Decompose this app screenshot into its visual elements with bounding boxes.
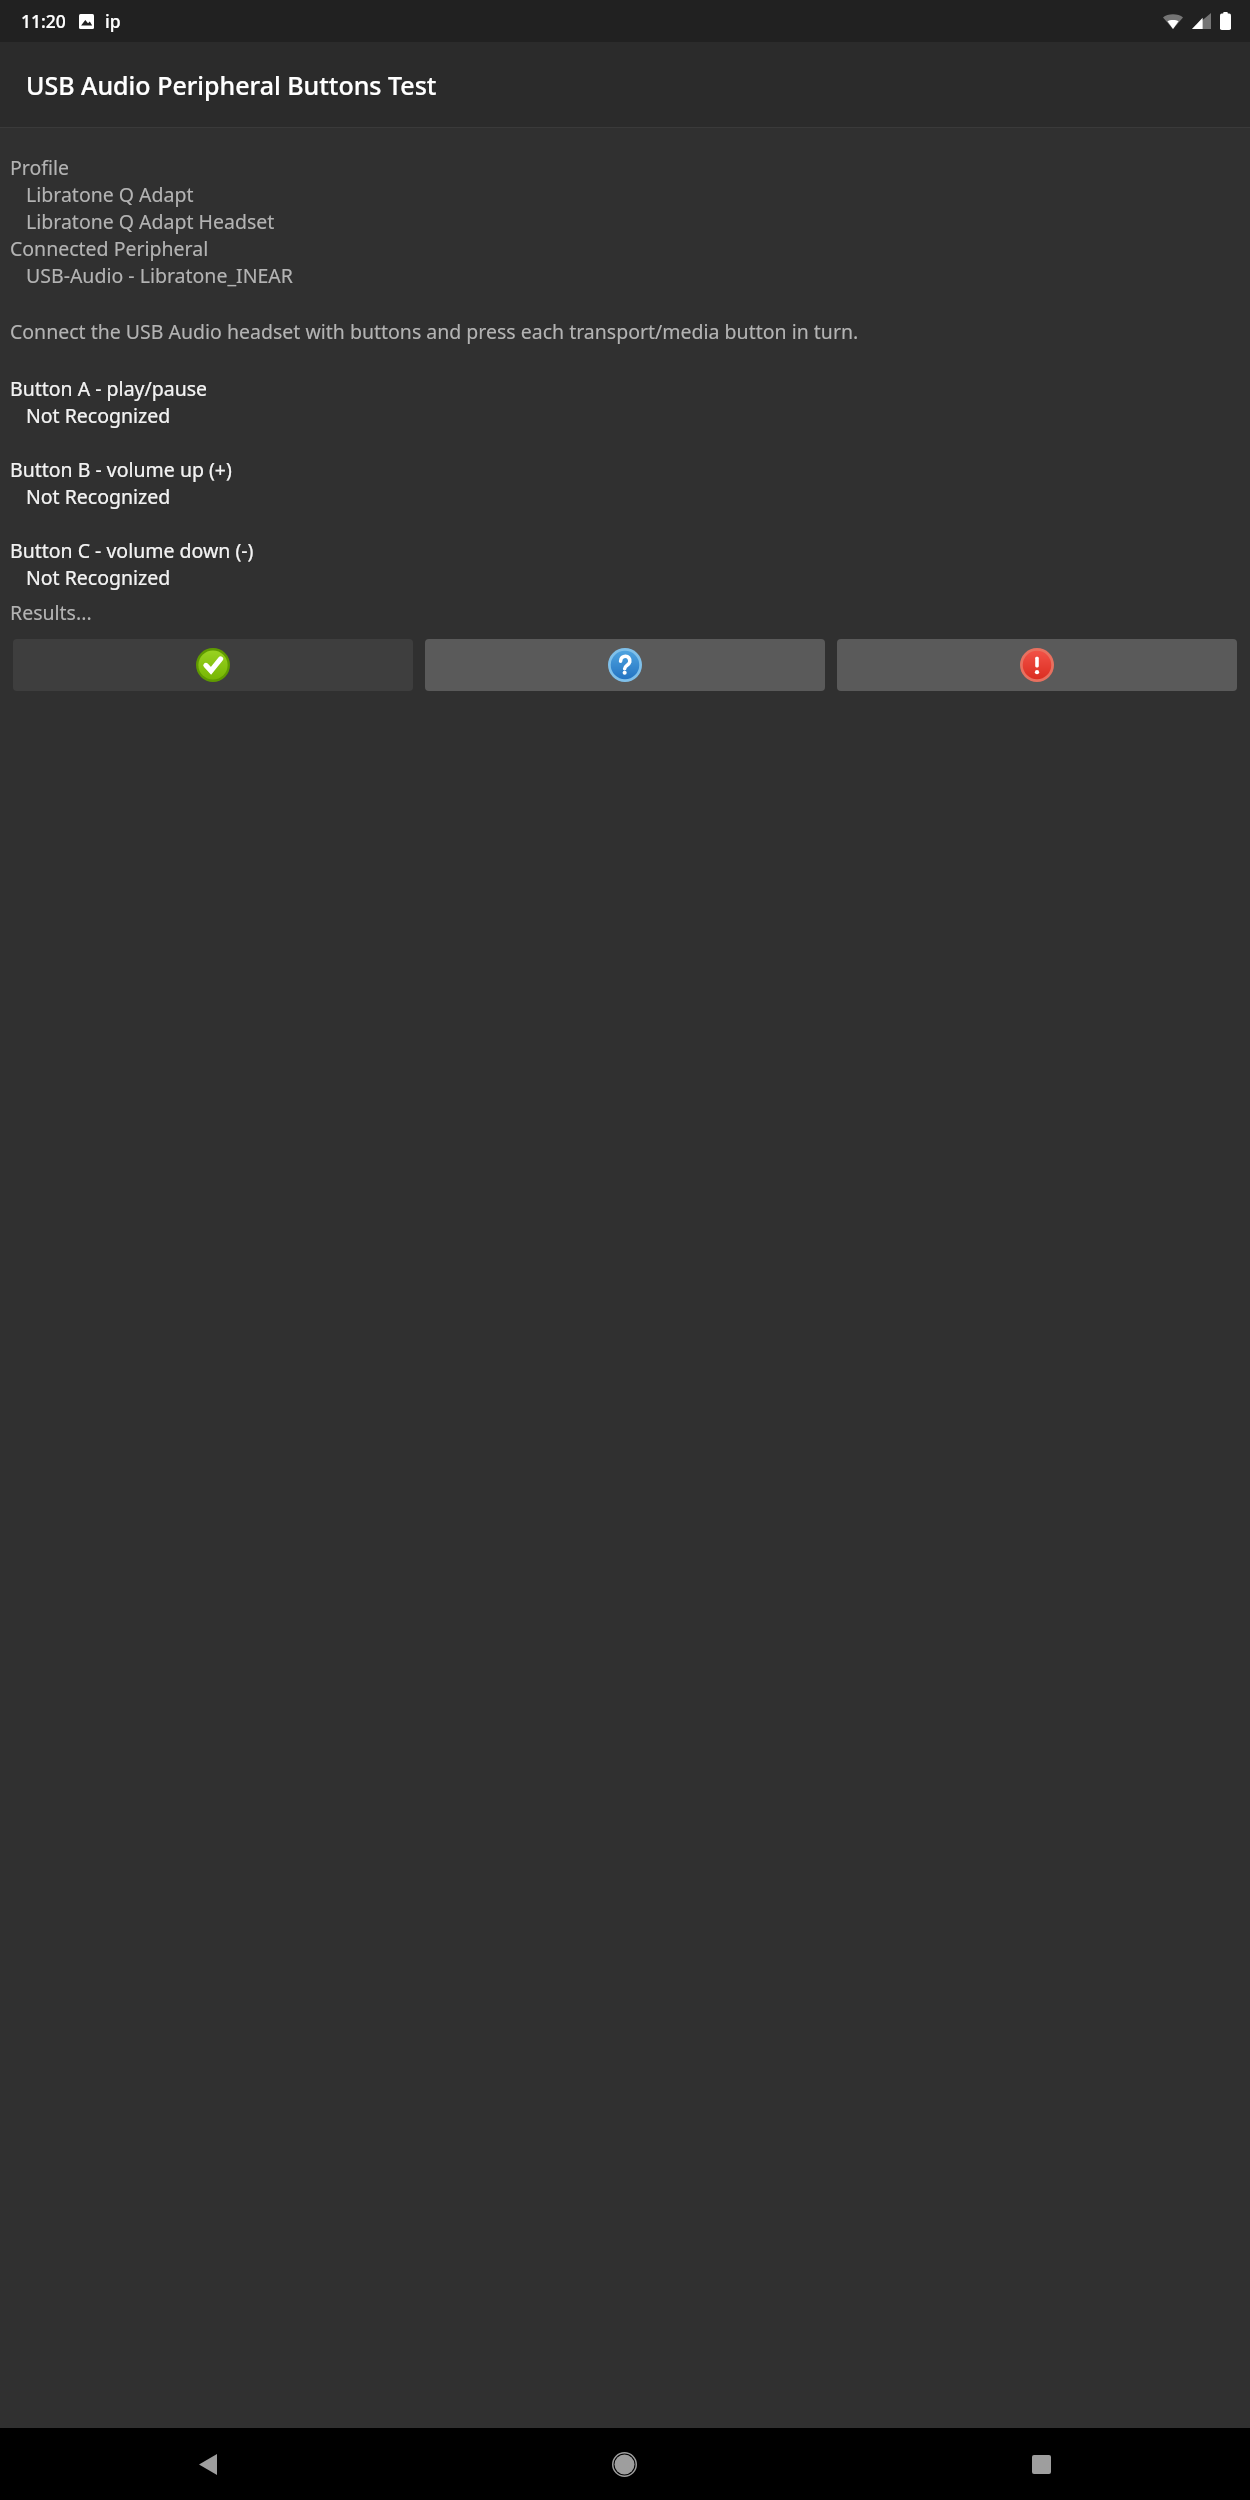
staticText: ip [105,9,121,33]
staticText: USB Audio Peripheral Buttons Test [26,68,437,102]
staticText: Connect the USB Audio headset with butto… [10,318,859,345]
staticText: Button A - play/pause [10,375,208,402]
staticText: USB-Audio - Libratone_INEAR [26,262,293,289]
staticText: Libratone Q Adapt [26,181,194,208]
staticText: Results... [10,599,92,626]
staticText: Button C - volume down (-) [10,537,254,564]
staticText: 11:20 [21,9,66,33]
staticText: Button B - volume up (+) [10,456,232,483]
staticText: Libratone Q Adapt Headset [26,208,275,235]
staticText: Not Recognized [26,483,171,510]
button[interactable]: Fail [837,639,1237,691]
button[interactable]: Home [416,2428,833,2500]
button[interactable]: Back [0,2428,416,2500]
staticText: Not Recognized [26,564,171,591]
button[interactable]: Recent apps [833,2428,1250,2500]
staticText: Connected Peripheral [10,235,209,262]
button[interactable]: Pass [13,639,413,691]
staticText: Profile [10,154,70,181]
button[interactable]: Info [425,639,825,691]
staticText: Not Recognized [26,402,171,429]
